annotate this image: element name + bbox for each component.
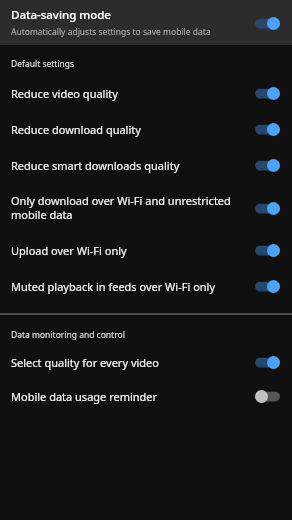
- button[interactable]: Reduce download quality: [0, 111, 292, 147]
- button[interactable]: Only download over Wi-Fi and unrestricte…: [0, 183, 292, 232]
- staticText: Only download over Wi-Fi and unrestricte…: [11, 193, 239, 222]
- button[interactable]: Reduce smart downloads quality: [0, 147, 292, 183]
- staticText: Default settings: [11, 58, 75, 70]
- button[interactable]: Select quality for every video, on: [247, 347, 287, 377]
- staticText: Data-saving mode: [11, 7, 111, 23]
- staticText: Reduce video quality: [11, 86, 239, 101]
- staticText: Mobile data usage reminder: [11, 389, 239, 404]
- button[interactable]: Muted playback in feeds over Wi-Fi only: [0, 268, 292, 304]
- button[interactable]: Muted playback in feeds over Wi-Fi only,…: [247, 271, 287, 301]
- staticText: Muted playback in feeds over Wi-Fi only: [11, 279, 239, 294]
- button[interactable]: Upload over Wi-Fi only, on: [247, 235, 287, 265]
- button[interactable]: Upload over Wi-Fi only: [0, 232, 292, 268]
- staticText: Reduce smart downloads quality: [11, 158, 239, 173]
- button[interactable]: Data-saving mode, on: [247, 8, 287, 38]
- button[interactable]: Data-saving mode: [0, 0, 292, 45]
- button[interactable]: Mobile data usage reminder, off: [247, 381, 287, 411]
- staticText: Automatically adjusts settings to save m…: [11, 26, 211, 38]
- button[interactable]: Mobile data usage reminder: [0, 379, 292, 413]
- button[interactable]: Reduce smart downloads quality, on: [247, 150, 287, 180]
- staticText: Data monitoring and control: [11, 329, 125, 341]
- button[interactable]: Reduce download quality, on: [247, 114, 287, 144]
- button[interactable]: Only download over Wi-Fi and unrestricte…: [247, 193, 287, 223]
- button[interactable]: Select quality for every video: [0, 345, 292, 379]
- button[interactable]: Reduce video quality, on: [247, 78, 287, 108]
- staticText: Reduce download quality: [11, 122, 239, 137]
- staticText: Select quality for every video: [11, 355, 239, 370]
- staticText: Upload over Wi-Fi only: [11, 243, 239, 258]
- button[interactable]: Reduce video quality: [0, 75, 292, 111]
